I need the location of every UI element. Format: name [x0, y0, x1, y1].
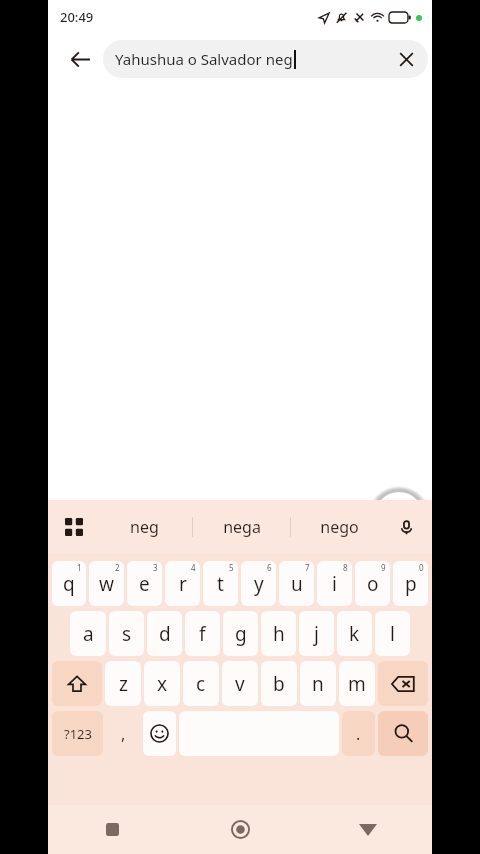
- staticText: 5: [229, 562, 234, 573]
- button[interactable]: ,: [106, 711, 140, 756]
- button[interactable]: b: [261, 661, 297, 706]
- staticText: n: [312, 671, 324, 697]
- button[interactable]: g: [223, 611, 258, 656]
- staticText: d: [159, 621, 171, 647]
- button[interactable]: nega: [193, 500, 290, 553]
- staticText: 4: [191, 562, 196, 573]
- button[interactable]: o: [355, 561, 390, 606]
- button[interactable]: ?123: [52, 711, 103, 756]
- staticText: l: [390, 621, 395, 647]
- button[interactable]: .: [342, 711, 375, 756]
- staticText: o: [367, 571, 379, 597]
- button[interactable]: m: [339, 661, 375, 706]
- staticText: c: [196, 671, 206, 697]
- staticText: 3: [153, 562, 158, 573]
- button[interactable]: f: [185, 611, 220, 656]
- button[interactable]: z: [105, 661, 141, 706]
- button[interactable]: Back: [58, 37, 102, 81]
- button[interactable]: Voice search: [375, 492, 423, 540]
- staticText: w: [99, 571, 114, 597]
- button[interactable]: Clear search: [390, 43, 422, 75]
- staticText: 20:49: [60, 8, 94, 26]
- button[interactable]: i: [317, 561, 352, 606]
- staticText: s: [122, 621, 132, 647]
- staticText: ,: [121, 723, 126, 745]
- staticText: 2: [115, 562, 120, 573]
- button[interactable]: neg: [96, 500, 192, 553]
- staticText: g: [235, 621, 247, 647]
- button[interactable]: k: [337, 611, 372, 656]
- button[interactable]: c: [183, 661, 219, 706]
- staticText: Yahushua o Salvador neg: [115, 49, 293, 69]
- staticText: nega: [223, 516, 261, 538]
- staticText: 0: [419, 562, 424, 573]
- button[interactable]: s: [109, 611, 144, 656]
- button[interactable]: Home: [176, 805, 304, 854]
- staticText: f: [199, 621, 206, 647]
- button[interactable]: w: [89, 561, 124, 606]
- staticText: x: [157, 671, 168, 697]
- staticText: p: [405, 571, 417, 597]
- staticText: m: [348, 671, 366, 697]
- button[interactable]: n: [300, 661, 336, 706]
- staticText: j: [314, 621, 319, 647]
- button[interactable]: t: [203, 561, 238, 606]
- button[interactable]: y: [241, 561, 276, 606]
- button[interactable]: Voice input: [384, 505, 428, 549]
- staticText: 8: [343, 562, 348, 573]
- staticText: h: [273, 621, 285, 647]
- button[interactable]: Back: [304, 805, 432, 854]
- button[interactable]: j: [299, 611, 334, 656]
- button[interactable]: q: [52, 561, 86, 606]
- button[interactable]: Yahushua o Salvador neg: [103, 40, 428, 78]
- staticText: nego: [320, 516, 359, 538]
- button[interactable]: d: [147, 611, 182, 656]
- staticText: y: [254, 571, 264, 597]
- staticText: 6: [267, 562, 272, 573]
- staticText: a: [83, 621, 94, 647]
- staticText: .: [356, 723, 361, 745]
- staticText: k: [349, 621, 360, 647]
- button[interactable]: Shift: [52, 661, 102, 706]
- button[interactable]: h: [261, 611, 296, 656]
- button[interactable]: Backspace: [378, 661, 428, 706]
- button[interactable]: Keyboard options: [52, 505, 96, 549]
- staticText: z: [119, 671, 128, 697]
- staticText: b: [273, 671, 285, 697]
- button[interactable]: v: [222, 661, 258, 706]
- staticText: i: [332, 571, 337, 597]
- staticText: 1: [77, 562, 82, 573]
- button[interactable]: Emoji: [143, 711, 176, 756]
- staticText: 9: [381, 562, 386, 573]
- staticText: u: [291, 571, 303, 597]
- button[interactable]: l: [375, 611, 410, 656]
- button[interactable]: r: [165, 561, 200, 606]
- button[interactable]: a: [70, 611, 106, 656]
- button[interactable]: p: [393, 561, 428, 606]
- button[interactable]: nego: [291, 500, 388, 553]
- button[interactable]: Search: [378, 711, 428, 756]
- staticText: q: [63, 571, 75, 597]
- staticText: neg: [130, 516, 159, 538]
- staticText: t: [217, 571, 224, 597]
- staticText: ?123: [64, 725, 92, 743]
- staticText: e: [139, 571, 150, 597]
- button[interactable]: u: [279, 561, 314, 606]
- staticText: r: [179, 571, 187, 597]
- staticText: 7: [305, 562, 310, 573]
- button[interactable]: x: [144, 661, 180, 706]
- staticText: v: [235, 671, 245, 697]
- button[interactable]: e: [127, 561, 162, 606]
- button[interactable]: Recents: [48, 805, 176, 854]
